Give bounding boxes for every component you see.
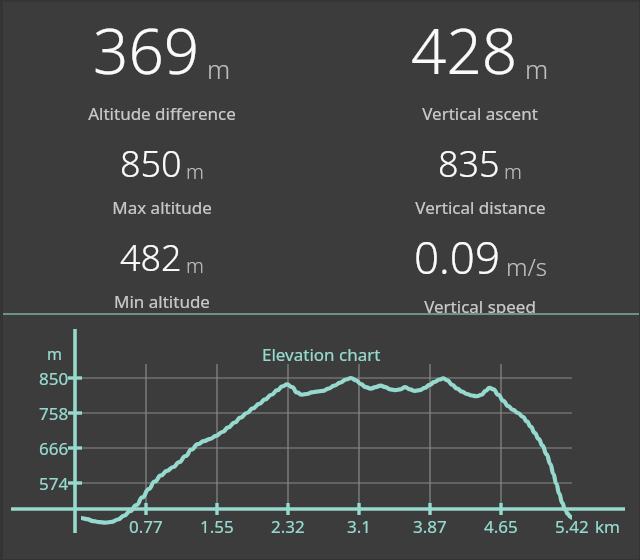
staticText: 5.42 xyxy=(555,515,589,538)
staticText: 482 xyxy=(120,233,182,282)
staticText: 666 xyxy=(39,437,69,460)
staticText: 369 xyxy=(93,8,200,92)
button[interactable]: 428 xyxy=(321,2,639,125)
staticText: Max altitude xyxy=(112,196,212,219)
staticText: 4.65 xyxy=(484,515,518,538)
staticText: 850 xyxy=(39,367,69,390)
staticText: m xyxy=(207,51,231,86)
staticText: Vertical distance xyxy=(415,196,546,219)
staticText: 574 xyxy=(39,472,69,495)
staticText: Min altitude xyxy=(114,290,210,313)
staticText: Vertical ascent xyxy=(422,102,538,125)
staticText: 758 xyxy=(39,402,69,425)
staticText: 0.09 xyxy=(414,227,501,287)
staticText: m xyxy=(186,158,204,185)
staticText: 3.1 xyxy=(347,515,372,538)
staticText: 850 xyxy=(120,139,182,188)
staticText: 428 xyxy=(411,8,518,92)
staticText: m/s xyxy=(506,250,547,283)
staticText: 835 xyxy=(438,139,500,188)
staticText: Altitude difference xyxy=(88,102,236,125)
staticText: Vertical speed xyxy=(424,295,536,313)
staticText: m xyxy=(186,252,204,279)
staticText: m xyxy=(504,158,522,185)
button[interactable]: 835 xyxy=(321,125,639,219)
staticText: 0.77 xyxy=(129,515,163,538)
staticText: 3.87 xyxy=(413,515,447,538)
button[interactable]: 482 xyxy=(3,219,321,313)
button[interactable]: 369 xyxy=(3,2,321,125)
staticText: m xyxy=(47,343,62,365)
staticText: 1.55 xyxy=(200,515,234,538)
staticText: m xyxy=(525,51,549,86)
button[interactable]: Elevation chart xyxy=(3,315,639,559)
button[interactable]: 850 xyxy=(3,125,321,219)
staticText: km xyxy=(595,515,620,538)
button[interactable]: 0.09 xyxy=(321,219,639,313)
staticText: 2.32 xyxy=(271,515,305,538)
staticText: Elevation chart xyxy=(262,343,381,366)
